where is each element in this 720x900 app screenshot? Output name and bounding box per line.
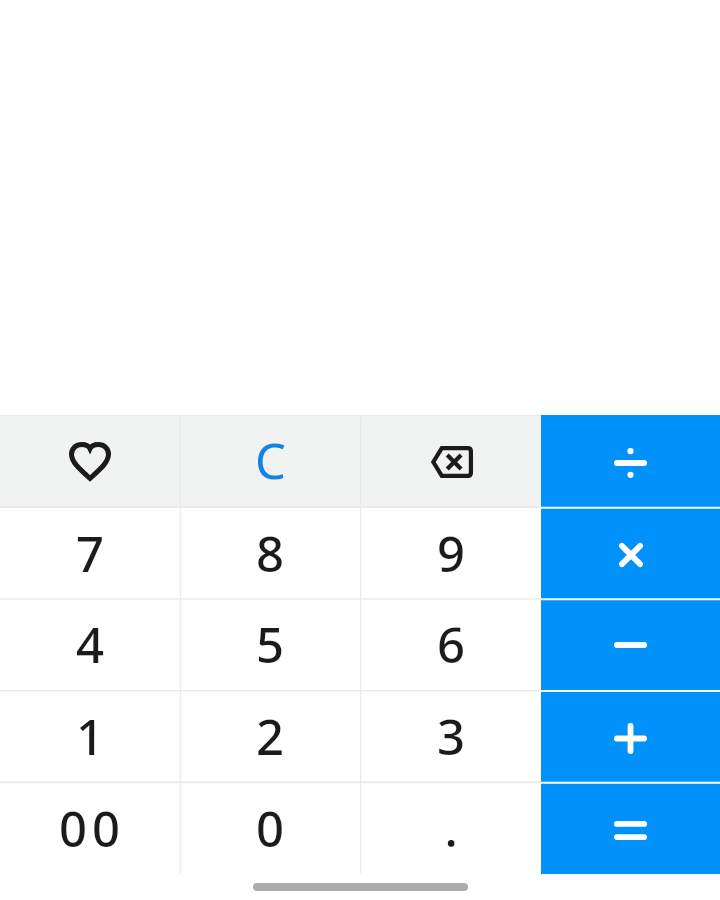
button[interactable]: Multiply [541, 507, 720, 599]
staticText: 8 [256, 520, 289, 587]
other: Minus [614, 642, 647, 648]
button[interactable]: 7 [0, 507, 180, 599]
button[interactable]: 0 [180, 782, 360, 874]
button[interactable]: Divide [541, 415, 720, 507]
staticText: 9 [437, 520, 470, 587]
other: Backspace [430, 446, 473, 478]
staticText: 4 [76, 611, 109, 678]
button[interactable]: Equals [541, 782, 720, 874]
staticText: 2 [256, 703, 289, 770]
button[interactable]: 3 [361, 690, 541, 782]
other: Equals [614, 821, 647, 840]
button[interactable]: 1 [0, 690, 180, 782]
button[interactable]: 2 [180, 690, 360, 782]
button[interactable]: Plus [541, 690, 720, 782]
staticText: 3 [437, 703, 470, 770]
staticText: 0 [256, 795, 289, 862]
staticText: 00 [59, 795, 125, 862]
button[interactable]: 8 [180, 507, 360, 599]
other: Plus [614, 723, 647, 754]
staticText: . [444, 795, 463, 862]
staticText: C [255, 427, 286, 494]
staticText: 1 [76, 703, 109, 770]
other: Divide [614, 448, 647, 478]
button[interactable]: 9 [361, 507, 541, 599]
button[interactable]: Favorite [0, 415, 180, 507]
other: Favorite [69, 442, 111, 481]
button[interactable]: . [361, 782, 541, 874]
button[interactable]: 00 [0, 782, 180, 874]
button[interactable]: 6 [361, 598, 541, 690]
other: Multiply [619, 543, 643, 567]
staticText: 6 [437, 611, 470, 678]
staticText: 7 [76, 520, 109, 587]
button[interactable]: C [180, 415, 360, 507]
button[interactable]: Minus [541, 598, 720, 690]
button[interactable]: Backspace [361, 415, 541, 507]
staticText: 5 [256, 611, 289, 678]
button[interactable]: 5 [180, 598, 360, 690]
button[interactable]: 4 [0, 598, 180, 690]
